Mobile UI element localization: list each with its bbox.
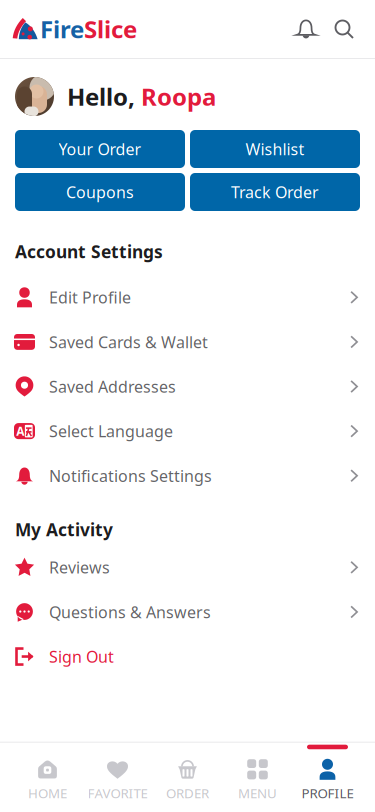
staticText: Saved Addresses <box>49 376 176 397</box>
button[interactable]: FAVORITE <box>82 743 152 802</box>
staticText: Slice <box>84 13 137 45</box>
button[interactable]: A <box>0 409 375 453</box>
staticText: Roopa <box>141 81 216 112</box>
staticText: Track Order <box>231 181 319 203</box>
staticText: Account Settings <box>15 240 163 263</box>
button[interactable]: Track Order <box>190 173 360 211</box>
staticText: MENU <box>238 784 277 802</box>
button[interactable]: Coupons <box>15 173 185 211</box>
button[interactable]: MENU <box>222 743 292 802</box>
staticText: Wishlist <box>245 138 304 160</box>
staticText: Reviews <box>49 557 110 578</box>
staticText: Questions & Answers <box>49 601 211 622</box>
staticText: Edit Profile <box>49 287 131 308</box>
button[interactable]: Edit Profile <box>0 275 375 320</box>
button[interactable]: Your Order <box>15 130 185 168</box>
staticText: Coupons <box>66 181 134 203</box>
staticText: My Activity <box>15 518 113 541</box>
button[interactable]: PROFILE <box>292 743 362 802</box>
staticText: A <box>16 423 24 439</box>
button[interactable]: Search <box>325 9 363 49</box>
staticText: HOME <box>28 784 67 802</box>
staticText: Select Language <box>49 420 173 442</box>
staticText: Saved Cards & Wallet <box>49 331 208 352</box>
staticText: Hello, <box>67 81 141 112</box>
staticText: FAVORITE <box>87 784 147 802</box>
button[interactable]: Reviews <box>0 545 375 590</box>
staticText: Fire <box>40 13 84 45</box>
button[interactable]: Sign Out <box>0 634 375 679</box>
button[interactable]: Notifications Settings <box>0 453 375 498</box>
button[interactable]: Saved Addresses <box>0 364 375 409</box>
staticText: PROFILE <box>301 784 353 802</box>
button[interactable]: ORDER <box>152 743 222 802</box>
button[interactable]: Notifications <box>287 9 325 49</box>
staticText: Your Order <box>58 138 141 160</box>
staticText: ORDER <box>166 784 209 802</box>
button[interactable]: Questions & Answers <box>0 590 375 634</box>
button[interactable]: HOME <box>12 743 82 802</box>
staticText: Sign Out <box>49 646 114 667</box>
staticText: Notifications Settings <box>49 465 212 486</box>
button[interactable]: Wishlist <box>190 130 360 168</box>
button[interactable]: Saved Cards & Wallet <box>0 320 375 364</box>
